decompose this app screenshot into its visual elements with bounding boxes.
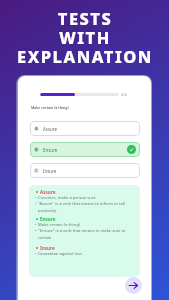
staticText: Ensure [43,147,58,153]
staticText: Assure [40,189,56,195]
staticText: B [35,147,38,152]
staticText: Insure [43,168,57,174]
staticText: Insure [40,245,55,251]
staticText: • [35,251,38,257]
button[interactable]: B [30,142,140,157]
staticText: "Ensure" is a verb that means to make su… [38,228,135,240]
button[interactable]: C [30,163,140,178]
staticText: C [35,168,38,173]
staticText: "Assure" is a verb that means to inform … [38,201,135,213]
staticText: • [35,222,38,228]
button[interactable]: A [30,121,140,136]
staticText: Ensure [40,216,56,222]
staticText: Make certain (a thing) [38,222,80,228]
staticText: TESTS WITH EXPLANATION [17,7,153,68]
button[interactable]: Next question [125,277,142,294]
staticText: Convince, make a person sure [38,195,96,201]
staticText: Guarantee against loss [38,251,83,257]
staticText: • [35,228,38,234]
staticText: • [35,195,38,201]
staticText: Make certain (a thing) [31,105,69,110]
staticText: 4/6 [121,92,128,97]
staticText: A [35,126,38,131]
staticText: Assure [43,126,57,132]
staticText: • [35,201,38,207]
